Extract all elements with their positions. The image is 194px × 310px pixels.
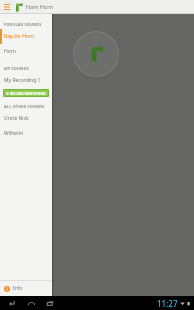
staticText: My Recording 1 (4, 77, 41, 84)
staticText: Uncle Nick (4, 115, 29, 122)
button[interactable]: Recent apps (44, 297, 56, 309)
button[interactable]: Rap Air Horn (0, 29, 52, 44)
button[interactable]: Open navigation drawer (1, 1, 12, 12)
staticText: Info (13, 285, 23, 292)
staticText: Ham Horn (26, 3, 53, 10)
button[interactable]: Info (0, 281, 52, 296)
staticText: 11:27 (157, 298, 178, 309)
staticText: MY SOUNDS (4, 66, 29, 71)
button[interactable]: My Recording 1 (0, 73, 52, 88)
button[interactable]: Wilhelm (0, 126, 52, 141)
staticText: POPULAR SOUNDS (4, 22, 42, 27)
button[interactable]: RECORD NEW SOUND (3, 89, 49, 97)
staticText: Wilhelm (4, 130, 24, 137)
button[interactable]: App icon (12, 1, 24, 13)
staticText: RECORD NEW SOUND (10, 91, 46, 96)
button[interactable]: Back (6, 297, 18, 309)
staticText: ALL OTHER SOUNDS (4, 104, 45, 109)
button[interactable]: Uncle Nick (0, 111, 52, 126)
staticText: Rap Air Horn (4, 33, 35, 40)
button[interactable]: Horn (0, 44, 52, 59)
button[interactable]: Home (25, 297, 37, 309)
staticText: Horn (4, 48, 16, 55)
button[interactable]: Play air horn (73, 31, 119, 77)
